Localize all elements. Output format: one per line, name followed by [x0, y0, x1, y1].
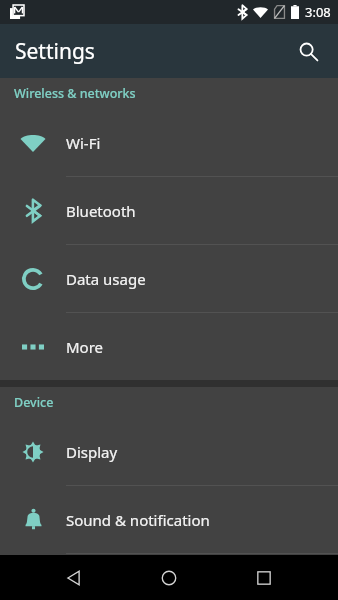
staticText: Settings — [15, 37, 95, 66]
button[interactable]: Home — [146, 555, 192, 600]
button[interactable]: Bluetooth — [0, 177, 338, 244]
button[interactable]: Data usage — [0, 245, 338, 312]
staticText: More — [66, 337, 104, 357]
button[interactable]: Search — [286, 29, 330, 73]
staticText: Wi-Fi — [66, 133, 101, 153]
button[interactable]: Display — [0, 418, 338, 485]
button[interactable]: Wi-Fi — [0, 109, 338, 176]
staticText: Data usage — [66, 269, 146, 289]
staticText: Device — [14, 394, 54, 411]
staticText: Display — [66, 442, 118, 462]
button[interactable]: Recent apps — [241, 555, 287, 600]
staticText: 3:08 — [305, 3, 331, 21]
button[interactable]: Sound & notification — [0, 486, 338, 553]
button[interactable]: More — [0, 313, 338, 380]
button[interactable]: Back — [51, 555, 97, 600]
staticText: Sound & notification — [66, 510, 210, 530]
staticText: Wireless & networks — [14, 85, 136, 102]
staticText: Bluetooth — [66, 201, 136, 221]
